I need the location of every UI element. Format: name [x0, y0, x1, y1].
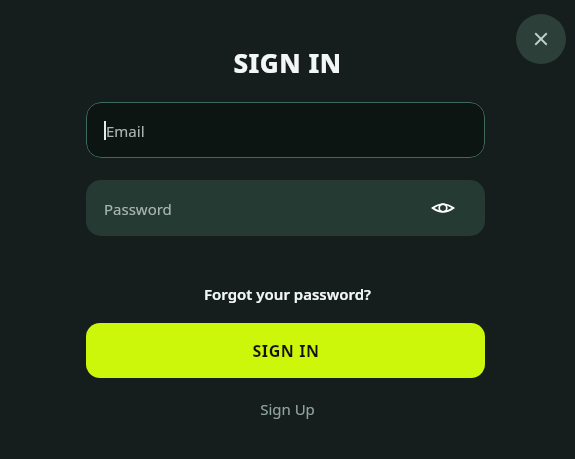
- staticText: SIGN IN: [0, 45, 575, 80]
- staticText: Sign Up: [260, 399, 315, 419]
- staticText: SIGN IN: [252, 340, 320, 362]
- button[interactable]: Forgot your password?: [190, 281, 385, 307]
- button[interactable]: Sign Up: [235, 396, 340, 422]
- staticText: Password: [104, 199, 172, 219]
- button[interactable]: Show password: [427, 192, 459, 224]
- button[interactable]: Email: [86, 102, 485, 158]
- button[interactable]: Password: [86, 180, 485, 236]
- staticText: Forgot your password?: [204, 284, 371, 304]
- staticText: Email: [106, 121, 145, 141]
- button[interactable]: SIGN IN: [86, 323, 485, 378]
- button[interactable]: Close: [516, 14, 566, 64]
